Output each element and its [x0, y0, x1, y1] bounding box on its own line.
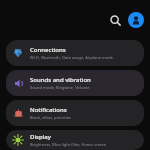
staticText: Display: [30, 133, 51, 141]
staticText: Connections: [30, 46, 66, 54]
staticText: Block, allow, prioritise: [30, 115, 71, 120]
staticText: Brightness, Blue light filter, Home scre…: [30, 142, 107, 147]
button[interactable]: Display: [6, 130, 144, 150]
button[interactable]: Notifications: [6, 100, 144, 126]
staticText: Sounds and vibration: [30, 76, 91, 84]
button[interactable]: Sounds and vibration: [6, 70, 144, 96]
button[interactable]: Search: [106, 11, 124, 29]
staticText: Wi-Fi, Bluetooth, Data usage, Airplane m…: [30, 55, 113, 60]
staticText: Sound mode, Ringtone, Volume: [30, 85, 90, 90]
button[interactable]: Connections: [6, 40, 144, 66]
staticText: Notifications: [30, 106, 67, 114]
button[interactable]: Account: [128, 12, 144, 28]
